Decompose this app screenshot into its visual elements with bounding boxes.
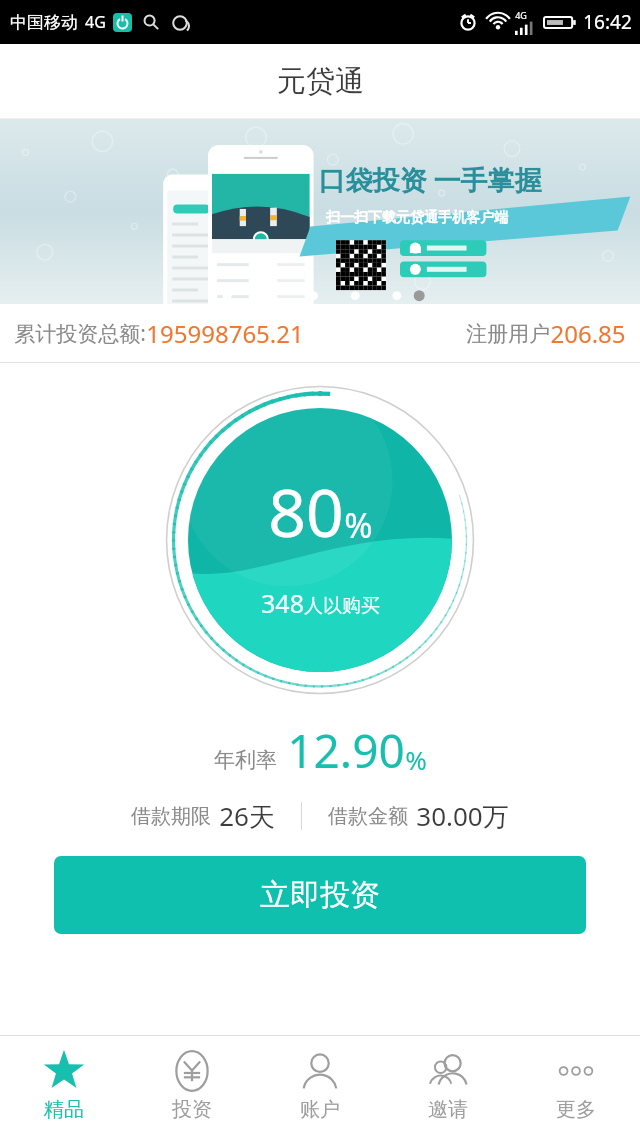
staticText: 更多 <box>556 1097 596 1122</box>
staticText: 年利率 <box>214 747 277 773</box>
staticText: 30.00万 <box>416 798 509 834</box>
staticText: 邀请 <box>428 1097 468 1122</box>
staticText: 26天 <box>219 798 275 834</box>
staticText: 348 <box>261 586 304 620</box>
button[interactable]: 账户 <box>256 1036 384 1136</box>
staticText: 16:42 <box>583 9 632 35</box>
staticText: 精品 <box>44 1097 84 1122</box>
staticText: 口袋投资 一手掌握 <box>318 161 542 198</box>
staticText: 累计投资总额: <box>14 319 146 348</box>
staticText: 4G <box>515 9 527 21</box>
staticText: 206.85 <box>550 317 626 350</box>
staticText: % <box>405 742 427 777</box>
staticText: 元贷通 <box>277 63 364 100</box>
staticText: 借款金额 <box>328 804 408 829</box>
button[interactable]: 邀请 <box>384 1036 512 1136</box>
staticText: 中国移动 <box>10 12 78 33</box>
staticText: 195998765.21 <box>146 317 304 350</box>
staticText: 80 <box>268 466 344 556</box>
staticText: % <box>344 502 373 548</box>
staticText: 4G <box>85 11 106 33</box>
staticText: 扫一扫下载元贷通手机客户端 <box>326 209 508 227</box>
staticText: 12.90 <box>287 719 405 782</box>
staticText: 账户 <box>300 1097 340 1122</box>
staticText: 注册用户 <box>466 321 550 347</box>
staticText: 借款期限 <box>131 804 211 829</box>
staticText: 立即投资 <box>260 876 380 914</box>
staticText: 人以购买 <box>304 594 380 618</box>
button[interactable]: 立即投资 <box>54 856 586 934</box>
button[interactable]: 投资 <box>128 1036 256 1136</box>
staticText: 投资 <box>172 1097 212 1122</box>
button[interactable]: 更多 <box>512 1036 640 1136</box>
button[interactable]: 精品 <box>0 1036 128 1136</box>
